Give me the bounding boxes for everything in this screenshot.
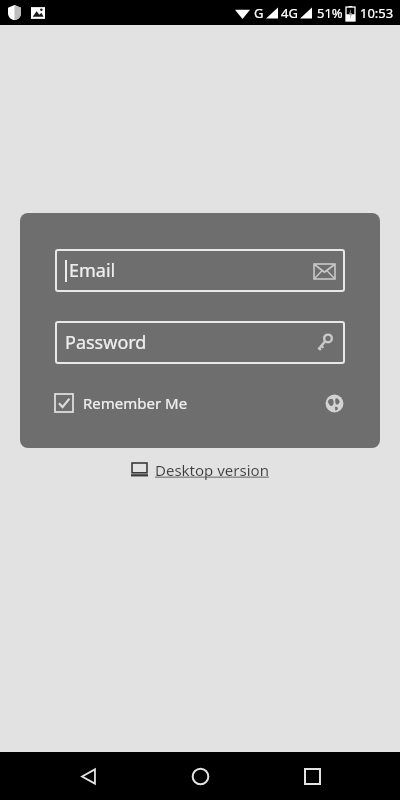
other: Password: [313, 332, 335, 354]
other: Email: [313, 263, 335, 279]
button[interactable]: Email: [55, 249, 345, 292]
staticText: 4G: [281, 4, 298, 22]
button[interactable]: Desktop version: [125, 457, 275, 483]
staticText: Remember Me: [83, 393, 188, 413]
staticText: Email: [69, 258, 116, 283]
button[interactable]: Back: [64, 752, 112, 800]
button[interactable]: Change language: [323, 392, 345, 414]
button[interactable]: Home: [176, 752, 224, 800]
staticText: 10:53: [360, 4, 394, 22]
staticText: 51%: [317, 4, 343, 22]
staticText: Desktop version: [155, 460, 269, 480]
button[interactable]: Remember Me: [55, 393, 188, 413]
button[interactable]: Recent apps: [288, 752, 336, 800]
staticText: G: [254, 4, 264, 22]
staticText: Password: [65, 330, 147, 355]
button[interactable]: Password: [55, 321, 345, 364]
